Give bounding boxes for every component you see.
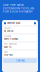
staticText: Schedule xyxy=(4,35,11,38)
button[interactable]: Continue xyxy=(3,58,37,63)
button[interactable]: Schedule xyxy=(3,34,37,41)
staticText: EXTENSION TO PLAN xyxy=(3,7,34,10)
button[interactable]: Amount xyxy=(3,27,37,33)
staticText: Continue xyxy=(15,59,24,62)
staticText: Amount xyxy=(4,27,11,30)
button[interactable]: Card xyxy=(3,50,37,57)
staticText: First payment xyxy=(4,43,17,46)
staticText: Every 2 weeks xyxy=(4,38,18,40)
button[interactable]: First payment xyxy=(3,42,37,49)
button[interactable]: Payment plan xyxy=(3,21,37,25)
staticText: FOR EACH PAYMENT xyxy=(3,10,33,13)
staticText: Card xyxy=(4,51,8,53)
staticText: Visa 4821 xyxy=(4,54,13,56)
staticText: Mar 14 xyxy=(4,46,11,48)
staticText: Payment plan xyxy=(7,22,20,25)
staticText: $1,240.00 xyxy=(4,30,13,32)
staticText: USE THE NEW xyxy=(3,3,24,7)
